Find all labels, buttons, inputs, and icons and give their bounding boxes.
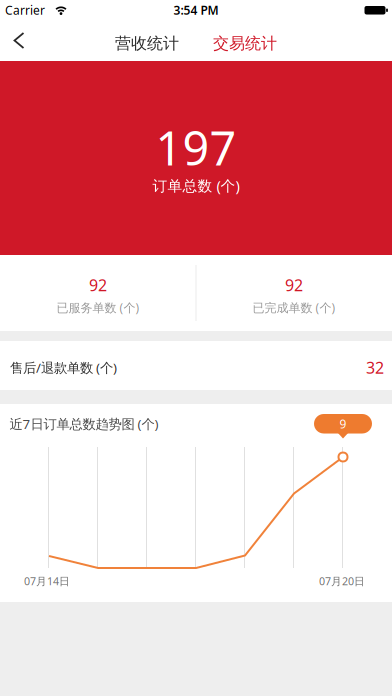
staticText: 3:54 PM [173,2,218,18]
staticText: 92 [285,274,303,296]
staticText: 07月20日 [319,574,365,588]
staticText: 近7日订单总数趋势图 (个) [9,415,158,433]
staticText: 92 [89,274,107,296]
button[interactable]: Back [0,20,25,61]
staticText: 营收统计 [115,34,179,53]
staticText: 32 [366,357,384,378]
button[interactable]: 营收统计 [115,34,179,53]
staticText: Carrier [5,2,45,18]
button[interactable]: 交易统计 [213,34,277,53]
staticText: 197 [155,116,236,178]
staticText: 已完成单数 (个) [252,300,335,316]
staticText: 已服务单数 (个) [56,300,139,316]
staticText: 售后/退款单数 (个) [10,359,117,376]
staticText: 07月14日 [24,574,70,588]
staticText: 9 [339,416,346,432]
staticText: 交易统计 [213,34,277,53]
staticText: 订单总数 (个) [152,176,239,195]
